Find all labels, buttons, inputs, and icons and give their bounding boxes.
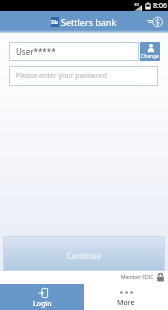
button[interactable]: User*****: [9, 42, 139, 61]
button[interactable]: Continue: [3, 236, 165, 271]
staticText: Change: [141, 53, 160, 60]
staticText: User*****: [16, 46, 56, 57]
staticText: Continue: [67, 250, 102, 261]
button[interactable]: More: [84, 284, 168, 310]
staticText: 3G: [134, 2, 140, 7]
staticText: 8:06: [153, 1, 167, 11]
button[interactable]: Change user: [140, 42, 160, 61]
button[interactable]: Please enter your password: [9, 66, 158, 86]
staticText: More: [117, 298, 135, 308]
staticText: Member FDIC: [121, 274, 154, 281]
staticText: Settlers bank: [61, 16, 117, 28]
staticText: Please enter your password: [16, 71, 108, 81]
button[interactable]: Rates: [146, 11, 168, 33]
staticText: Login: [33, 299, 52, 309]
staticText: Sb: [51, 18, 59, 26]
button[interactable]: Login: [0, 284, 84, 310]
